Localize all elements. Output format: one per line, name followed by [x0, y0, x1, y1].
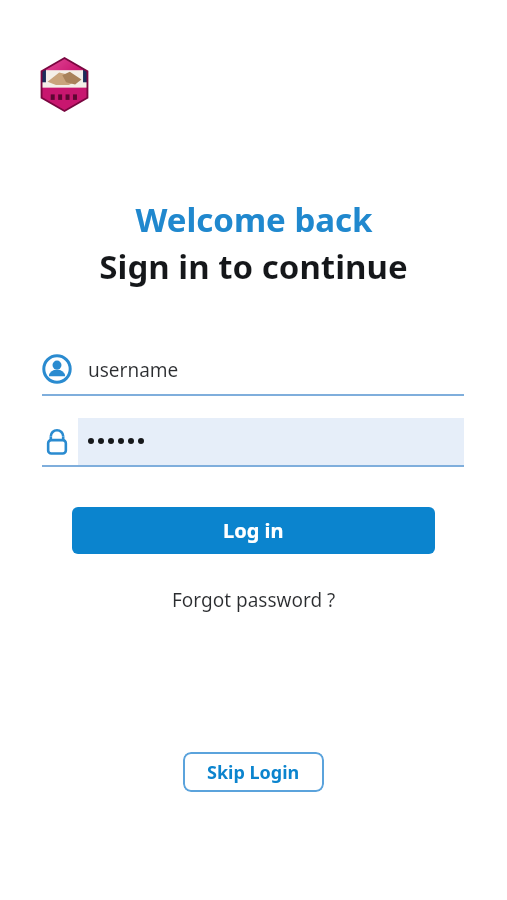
staticText: username — [88, 357, 179, 383]
staticText: Forgot password ? — [172, 587, 336, 613]
button[interactable]: Skip Login — [183, 752, 324, 792]
button[interactable] — [42, 418, 464, 467]
staticText: Welcome back — [135, 197, 373, 242]
other: JFBC logo — [38, 57, 91, 112]
button[interactable]: Forgot password ? — [162, 583, 346, 617]
button[interactable]: Log in — [72, 507, 435, 554]
staticText: Sign in to continue — [99, 244, 408, 289]
staticText: Skip Login — [207, 760, 300, 785]
staticText: Log in — [223, 517, 284, 544]
button[interactable]: username — [42, 348, 464, 396]
